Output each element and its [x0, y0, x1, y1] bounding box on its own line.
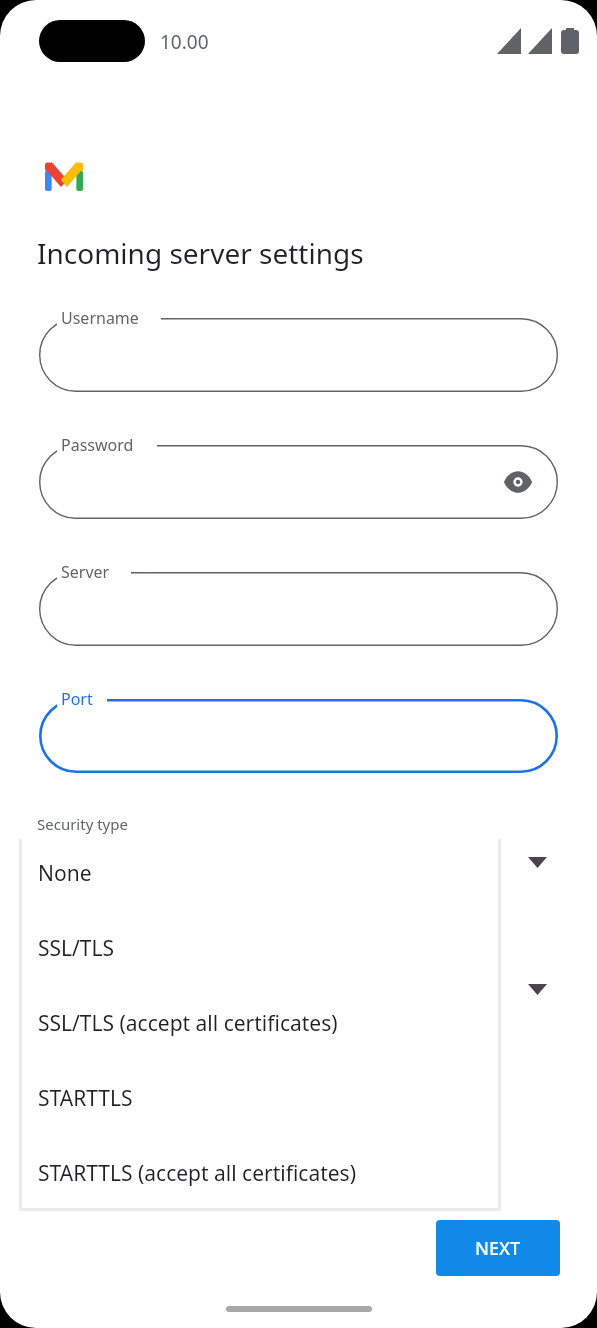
staticText: 10.00 [160, 29, 209, 55]
staticText: None [38, 859, 92, 888]
button[interactable] [39, 699, 558, 773]
button[interactable]: SSL/TLS [22, 911, 498, 986]
button[interactable]: SSL/TLS (accept all certificates) [22, 986, 498, 1061]
button[interactable]: Show password [39, 445, 558, 519]
button[interactable]: NEXT [436, 1220, 560, 1276]
staticText: SSL/TLS (accept all certificates) [38, 1009, 338, 1038]
staticText: STARTTLS [38, 1084, 133, 1113]
button[interactable]: Open dropdown [524, 980, 550, 998]
staticText: Server [61, 561, 110, 583]
button[interactable]: STARTTLS [22, 1061, 498, 1136]
staticText: Username [61, 307, 139, 329]
staticText: Incoming server settings [37, 234, 364, 272]
staticText: Password [61, 434, 134, 456]
staticText: Port [61, 688, 93, 710]
staticText: SSL/TLS [38, 934, 115, 963]
staticText: Security type [37, 814, 128, 834]
staticText: STARTTLS (accept all certificates) [38, 1159, 356, 1188]
button[interactable] [39, 572, 558, 646]
button[interactable]: Show password [496, 460, 540, 504]
staticText: NEXT [475, 1236, 521, 1261]
button[interactable]: Open dropdown [524, 853, 550, 871]
button[interactable] [39, 318, 558, 392]
button[interactable]: STARTTLS (accept all certificates) [22, 1136, 498, 1211]
button[interactable]: None [22, 836, 498, 911]
